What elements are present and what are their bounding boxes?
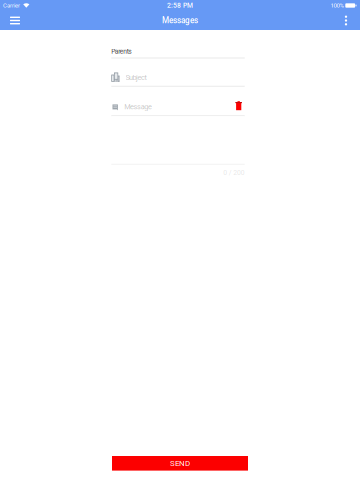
button[interactable]: Delete xyxy=(235,101,242,110)
staticText: Subject xyxy=(126,73,147,82)
staticText: Carrier xyxy=(3,2,20,9)
staticText: 100% xyxy=(330,2,343,9)
button[interactable]: SEND xyxy=(112,456,248,471)
staticText: Message xyxy=(124,102,152,111)
button[interactable]: More options xyxy=(335,11,357,30)
staticText: 0 / 200 xyxy=(223,169,245,177)
staticText: Messages xyxy=(162,16,198,25)
staticText: SEND xyxy=(170,459,190,468)
staticText: Parents xyxy=(111,48,131,55)
staticText: 2:58 PM xyxy=(167,1,193,9)
button[interactable]: Menu xyxy=(4,11,26,30)
